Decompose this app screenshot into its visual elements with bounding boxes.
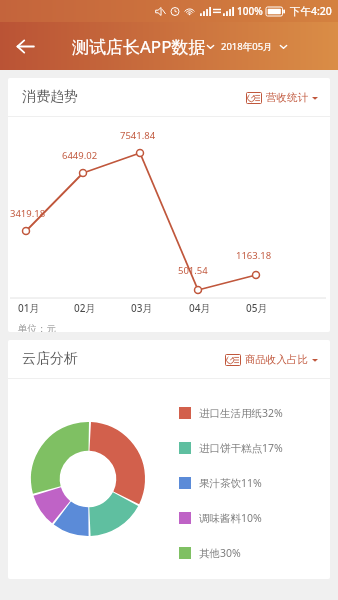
staticText: 消费趋势 [22, 88, 78, 106]
button[interactable]: 营收统计 [246, 91, 318, 104]
button[interactable]: 商品收入占比 [225, 353, 318, 366]
staticText: 501.54 [178, 264, 208, 277]
staticText: 01月 [18, 301, 40, 315]
button[interactable]: 2018年05月 [221, 40, 288, 53]
staticText: 3419.18 [10, 207, 46, 220]
staticText: 1163.18 [236, 249, 272, 262]
staticText: 进口生活用纸32% [199, 406, 283, 420]
staticText: 测试店长APP数据 [72, 35, 206, 58]
button[interactable]: 进口饼干糕点17% [179, 435, 330, 461]
staticText: 7541.84 [120, 129, 156, 142]
button[interactable]: 果汁茶饮11% [179, 470, 330, 496]
staticText: 进口饼干糕点17% [199, 441, 283, 455]
staticText: 下午4:20 [290, 4, 332, 18]
button[interactable]: 调味酱料10% [179, 505, 330, 531]
staticText: 云店分析 [22, 350, 78, 368]
staticText: 6449.02 [62, 149, 98, 162]
staticText: 其他30% [199, 546, 241, 560]
staticText: 04月 [189, 301, 211, 315]
staticText: 营收统计 [266, 91, 308, 104]
staticText: 03月 [131, 301, 153, 315]
staticText: 2018年05月 [221, 40, 273, 53]
button[interactable]: Back [3, 24, 47, 68]
staticText: 05月 [246, 301, 268, 315]
staticText: 果汁茶饮11% [199, 476, 262, 490]
staticText: 100% [237, 4, 263, 18]
button[interactable]: 进口生活用纸32% [179, 400, 330, 426]
button[interactable]: 其他30% [179, 540, 330, 566]
staticText: 调味酱料10% [199, 511, 262, 525]
staticText: 单位：元 [18, 323, 56, 332]
staticText: 02月 [74, 301, 96, 315]
staticText: 商品收入占比 [245, 353, 308, 366]
button[interactable]: 测试店长APP数据 [72, 35, 215, 58]
